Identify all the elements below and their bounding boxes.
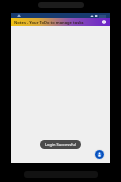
button[interactable]: Login Successful xyxy=(40,140,81,149)
staticText: Notes - Your ToDo to manage tasks xyxy=(14,20,100,25)
button[interactable]: Add note xyxy=(94,149,105,160)
staticText: Login Successful xyxy=(45,142,76,147)
button[interactable]: Menu xyxy=(100,18,108,26)
